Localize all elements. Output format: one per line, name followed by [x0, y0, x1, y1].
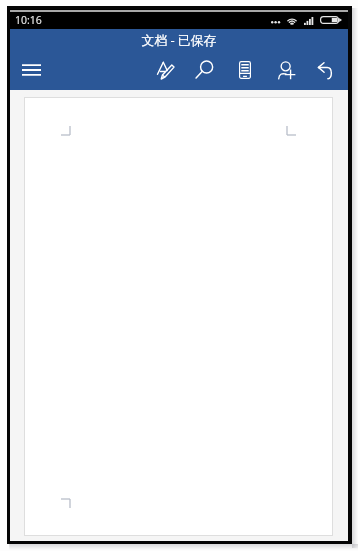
button[interactable] — [24, 97, 333, 536]
button[interactable]: Search — [187, 53, 221, 87]
button[interactable]: Format text — [148, 53, 182, 87]
staticText: 10:16 — [15, 13, 42, 27]
button[interactable]: Undo — [307, 53, 341, 87]
button[interactable]: Menu — [14, 53, 48, 87]
button[interactable]: Mobile view — [228, 53, 262, 87]
button[interactable]: Share — [269, 53, 303, 87]
staticText: 文档 - 已保存 — [10, 31, 348, 48]
